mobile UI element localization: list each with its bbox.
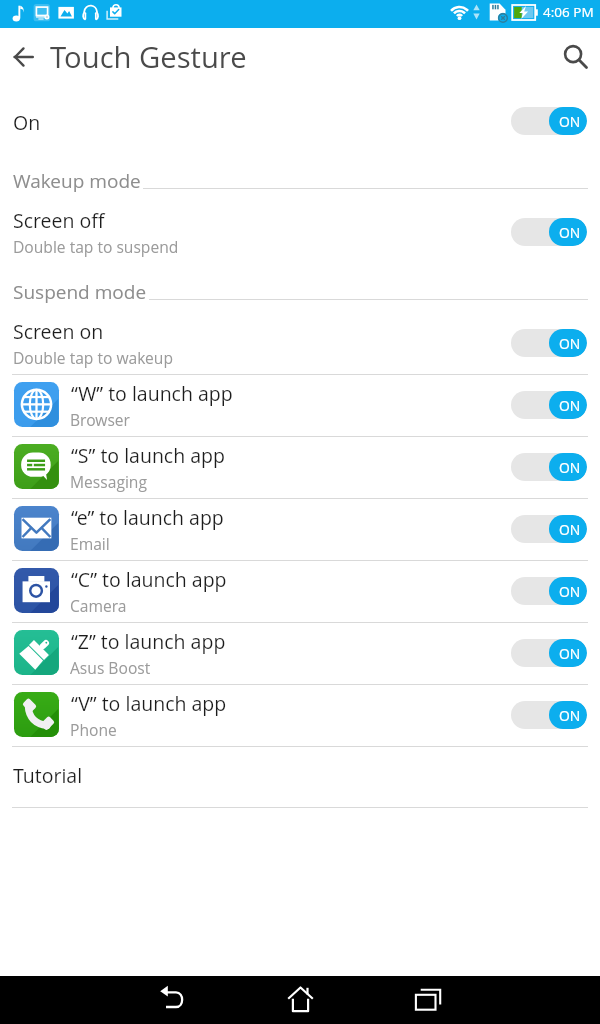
button[interactable]: Toggle	[511, 453, 587, 481]
staticText: ON	[559, 458, 581, 477]
staticText: ON	[559, 582, 581, 601]
staticText: Camera	[70, 595, 127, 616]
button[interactable]	[0, 200, 600, 262]
staticText: “W” to launch app	[71, 380, 233, 407]
button[interactable]: Toggle	[511, 107, 587, 135]
button[interactable]: Toggle	[511, 391, 587, 419]
staticText: ON	[559, 112, 581, 131]
staticText: Asus Boost	[70, 657, 151, 678]
button[interactable]	[0, 374, 600, 436]
button[interactable]: Recent apps	[404, 976, 452, 1024]
button[interactable]: Toggle	[511, 515, 587, 543]
staticText: Screen on	[13, 318, 104, 345]
button[interactable]: Back	[148, 976, 196, 1024]
staticText: “Z” to launch app	[71, 628, 226, 655]
staticText: Tutorial	[13, 762, 83, 789]
staticText: “S” to launch app	[71, 442, 225, 469]
staticText: Browser	[70, 409, 130, 430]
button[interactable]	[0, 498, 600, 560]
button[interactable]: Search	[550, 34, 598, 80]
button[interactable]: Toggle	[511, 577, 587, 605]
staticText: Wakeup mode	[13, 168, 141, 194]
staticText: ON	[559, 396, 581, 415]
staticText: Double tap to suspend	[13, 236, 179, 257]
staticText: Email	[70, 533, 110, 554]
button[interactable]: Toggle	[511, 701, 587, 729]
button[interactable]: Toggle	[511, 218, 587, 246]
button[interactable]	[0, 86, 600, 148]
button[interactable]: Toggle	[511, 329, 587, 357]
button[interactable]	[0, 311, 600, 373]
button[interactable]: Back	[0, 34, 48, 80]
staticText: ON	[559, 223, 581, 242]
staticText: Phone	[70, 719, 117, 740]
staticText: On	[13, 109, 41, 136]
staticText: “C” to launch app	[71, 566, 227, 593]
staticText: “e” to launch app	[71, 504, 224, 531]
button[interactable]	[0, 747, 600, 807]
staticText: ON	[559, 644, 581, 663]
button[interactable]	[0, 560, 600, 622]
button[interactable]	[0, 684, 600, 746]
button[interactable]	[0, 622, 600, 684]
staticText: ON	[559, 706, 581, 725]
button[interactable]: Toggle	[511, 639, 587, 667]
staticText: 4:06 PM	[543, 3, 594, 21]
staticText: Screen off	[13, 207, 105, 234]
staticText: Double tap to wakeup	[13, 347, 173, 368]
staticText: ON	[559, 520, 581, 539]
staticText: “V” to launch app	[71, 690, 227, 717]
button[interactable]: Home	[276, 976, 324, 1024]
staticText: ON	[559, 334, 581, 353]
button[interactable]	[0, 436, 600, 498]
staticText: Touch Gesture	[50, 37, 247, 77]
staticText: Suspend mode	[13, 279, 147, 305]
staticText: Messaging	[70, 471, 147, 492]
